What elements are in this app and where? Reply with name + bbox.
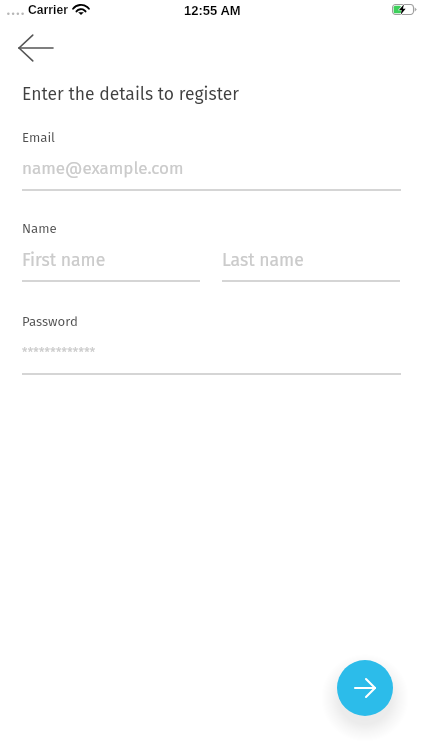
staticText: Name (22, 221, 57, 237)
staticText: Enter the details to register (22, 84, 239, 105)
staticText: Password (22, 314, 78, 330)
button[interactable]: Continue (337, 660, 393, 716)
button[interactable]: Email field (22, 154, 401, 192)
staticText: 12:55 AM (184, 3, 241, 18)
staticText: Email (22, 130, 55, 146)
button[interactable]: Password field (22, 342, 401, 376)
button[interactable]: First name field (22, 246, 200, 283)
button[interactable]: Back (13, 25, 59, 71)
staticText: First name (22, 250, 106, 271)
button[interactable]: Last name field (222, 246, 400, 283)
staticText: Carrier (28, 3, 68, 17)
staticText: name@example.com (22, 158, 184, 178)
staticText: ************* (22, 346, 96, 361)
staticText: Last name (222, 250, 304, 271)
